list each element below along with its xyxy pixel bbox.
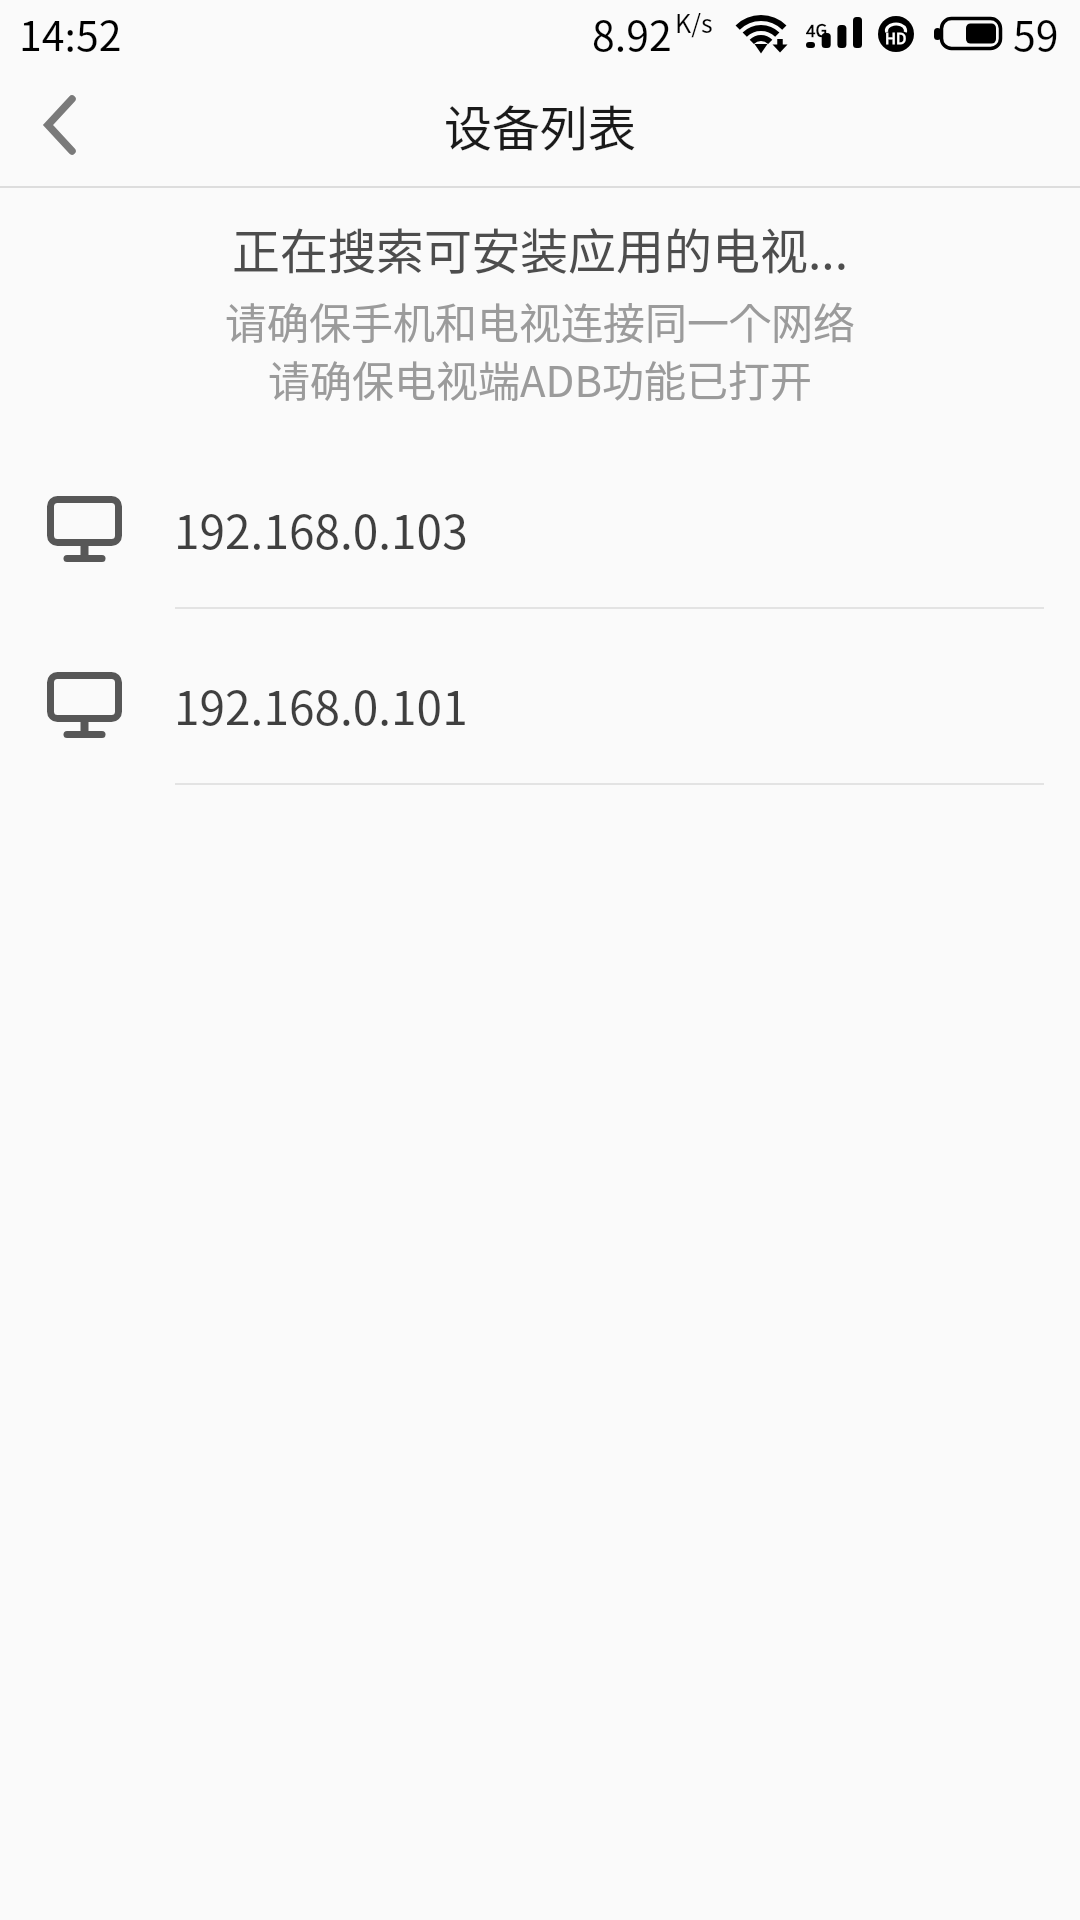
button[interactable]: 192.168.0.101 — [0, 609, 1080, 785]
staticText: 正在搜索可安装应用的电视... — [232, 213, 849, 283]
button[interactable]: 192.168.0.103 — [0, 433, 1080, 609]
staticText: 设备列表 — [444, 90, 637, 160]
staticText: 14:52 — [19, 3, 122, 62]
staticText: 请确保电视端ADB功能已打开 — [268, 348, 813, 409]
staticText: 请确保手机和电视连接同一个网络 — [225, 290, 856, 351]
staticText: 4G — [806, 17, 828, 42]
staticText: HD — [885, 27, 907, 49]
staticText: 192.168.0.103 — [174, 496, 468, 563]
staticText: 8.92 — [592, 3, 672, 62]
staticText: 192.168.0.101 — [174, 672, 468, 739]
staticText: K/s — [675, 4, 713, 40]
staticText: 59 — [1013, 3, 1059, 62]
button[interactable] — [24, 89, 96, 161]
